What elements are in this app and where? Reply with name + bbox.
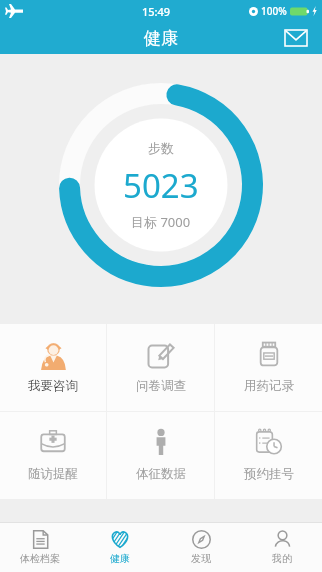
staticText: 100%	[261, 4, 287, 18]
staticText: 健康	[144, 28, 178, 49]
staticText: 步数	[148, 140, 174, 156]
staticText: 预约挂号	[244, 466, 294, 482]
staticText: 发现	[191, 552, 211, 565]
button[interactable]: 用药记录	[215, 324, 322, 411]
staticText: 健康	[110, 552, 130, 565]
button[interactable]: 发现	[160, 523, 241, 572]
button[interactable]: 随访提醒	[0, 412, 106, 499]
staticText: 体征数据	[136, 466, 186, 482]
staticText: 体检档案	[20, 552, 60, 565]
button[interactable]: 预约挂号	[215, 412, 322, 499]
staticText: 问卷调查	[136, 378, 186, 394]
button[interactable]: 我要咨询	[0, 324, 106, 411]
button[interactable]: 我的	[241, 523, 322, 572]
staticText: 5023	[123, 163, 199, 208]
button[interactable]: 体检档案	[0, 523, 80, 572]
button[interactable]: 问卷调查	[107, 324, 214, 411]
staticText: 目标 7000	[131, 213, 191, 231]
button[interactable]: 体征数据	[107, 412, 214, 499]
button[interactable]: 健康	[80, 523, 160, 572]
button[interactable]: Messages	[280, 22, 312, 54]
staticText: 用药记录	[244, 378, 294, 394]
staticText: 15:49	[142, 4, 171, 19]
staticText: 随访提醒	[28, 466, 78, 482]
staticText: 我的	[272, 552, 292, 565]
staticText: 我要咨询	[28, 378, 78, 394]
